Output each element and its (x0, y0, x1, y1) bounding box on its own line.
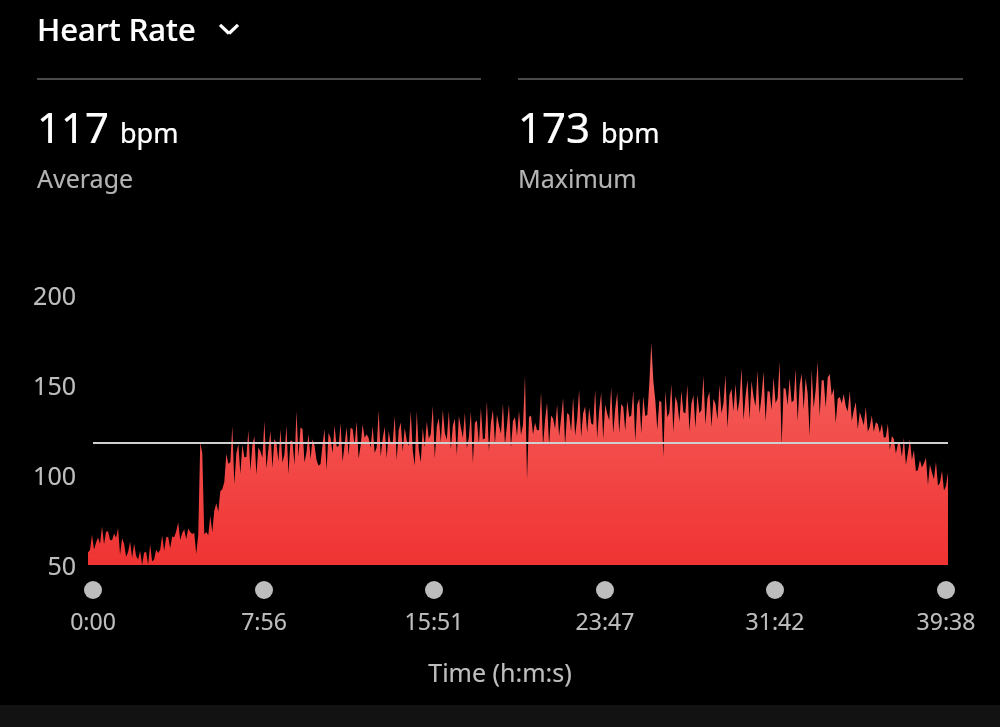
staticText: 100 (0, 458, 76, 492)
staticText: bpm (601, 114, 660, 151)
staticText: 173 (518, 98, 591, 155)
button[interactable]: 117 (37, 98, 179, 195)
staticText: 150 (0, 368, 76, 402)
staticText: 39:38 (886, 605, 1000, 636)
staticText: 200 (0, 278, 76, 312)
staticText: 117 (37, 98, 110, 155)
staticText: Heart Rate (37, 8, 196, 50)
staticText: 15:51 (374, 605, 494, 636)
staticText: Maximum (518, 161, 637, 195)
staticText: 50 (0, 548, 76, 582)
staticText: 31:42 (715, 605, 835, 636)
staticText: 0:00 (33, 605, 153, 636)
staticText: Time (h:m:s) (0, 655, 1000, 689)
other: Expand (214, 14, 244, 44)
staticText: bpm (120, 114, 179, 151)
staticText: Average (37, 161, 134, 195)
staticText: 23:47 (545, 605, 665, 636)
button[interactable]: 173 (518, 98, 660, 195)
staticText: 7:56 (204, 605, 324, 636)
button[interactable]: Heart Rate (37, 8, 252, 50)
